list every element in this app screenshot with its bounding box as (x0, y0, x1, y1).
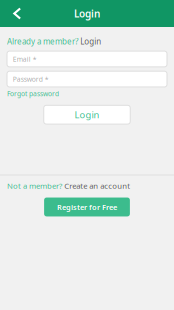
staticText: Register for Free (57, 202, 117, 212)
button[interactable]: Forgot password (7, 87, 59, 98)
staticText: Login (74, 108, 99, 121)
button[interactable]: Register for Free (44, 197, 130, 216)
button[interactable]: Login (44, 105, 130, 124)
staticText: Login (80, 36, 101, 47)
staticText: Not a member? (7, 180, 62, 191)
button[interactable]: Back (0, 0, 34, 27)
staticText: Password * (13, 74, 49, 84)
staticText: Create an account (64, 180, 130, 191)
staticText: Login (74, 7, 100, 20)
staticText: Email * (13, 54, 37, 64)
staticText: Forgot password (7, 89, 59, 98)
staticText: Already a member? (7, 36, 78, 47)
